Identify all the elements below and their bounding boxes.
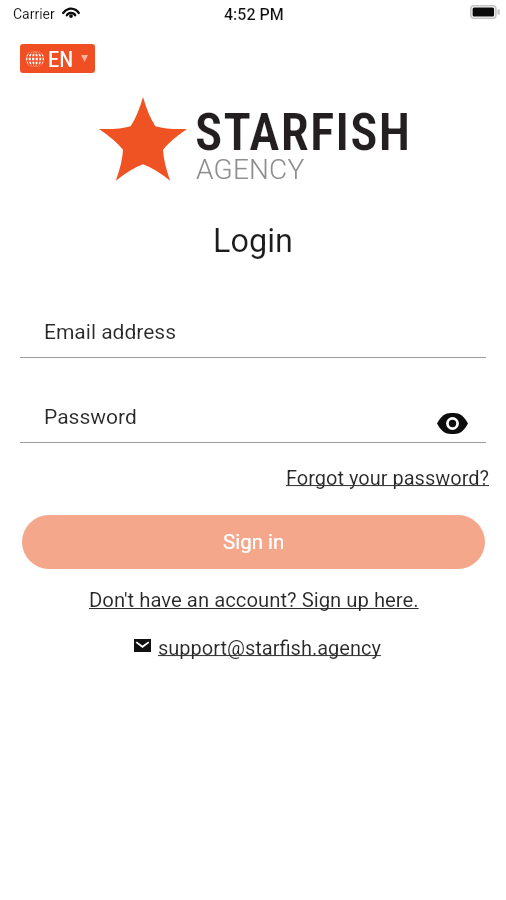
- staticText: AGENCY: [196, 153, 305, 186]
- button[interactable]: EN: [20, 44, 95, 73]
- button[interactable]: Don't have an account? Sign up here.: [89, 588, 419, 612]
- staticText: Sign in: [223, 530, 285, 554]
- staticText: Email address: [44, 320, 177, 345]
- button[interactable]: Sign in: [22, 515, 485, 569]
- button[interactable]: [20, 313, 486, 358]
- staticText: STARFISH: [195, 103, 412, 163]
- staticText: Carrier: [13, 6, 55, 22]
- staticText: EN: [48, 46, 74, 72]
- button[interactable]: support@starfish.agency: [134, 636, 381, 659]
- button[interactable]: Forgot your password?: [286, 466, 489, 489]
- button[interactable]: [20, 398, 420, 443]
- button[interactable]: Show password: [430, 408, 474, 438]
- staticText: support@starfish.agency: [158, 636, 381, 659]
- staticText: 4:52 PM: [224, 5, 284, 24]
- staticText: Login: [0, 222, 506, 260]
- staticText: Password: [44, 405, 137, 430]
